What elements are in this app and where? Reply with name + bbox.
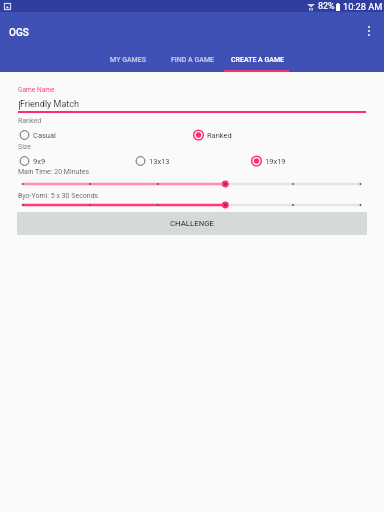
staticText: 13x13 (149, 157, 170, 166)
staticText: 9x9 (33, 157, 46, 166)
staticText: 82% (318, 1, 335, 12)
staticText: FIND A GAME (171, 56, 214, 64)
staticText: 10:28 AM (343, 1, 383, 12)
staticText: Ranked (207, 131, 232, 140)
button[interactable] (0, 199, 384, 211)
staticText: Game Name (18, 86, 55, 94)
staticText: Main Time: 20 Minutes (18, 168, 90, 176)
staticText: CHALLENGE (170, 219, 214, 228)
staticText: Ranked (18, 117, 42, 125)
button[interactable]: CREATE A GAME (225, 48, 290, 72)
staticText: OGS (9, 27, 29, 39)
staticText: MY GAMES (110, 56, 146, 64)
button[interactable]: 19x19 (250, 156, 366, 166)
button[interactable]: 9x9 (18, 156, 134, 166)
button[interactable]: MY GAMES (95, 48, 160, 72)
button[interactable] (0, 178, 384, 190)
button[interactable]: 13x13 (134, 156, 250, 166)
button[interactable]: Ranked (192, 130, 366, 140)
staticText: CREATE A GAME (231, 56, 284, 64)
staticText: Friendly Match (20, 99, 79, 110)
staticText: Size (18, 143, 31, 151)
button[interactable]: FIND A GAME (160, 48, 225, 72)
staticText: Casual (33, 131, 56, 140)
button[interactable]: CHALLENGE (17, 212, 367, 235)
staticText: Byo-Yomi: 5 x 30 Seconds (18, 192, 99, 200)
staticText: 19x19 (265, 157, 286, 166)
button[interactable]: Casual (18, 130, 192, 140)
button[interactable]: More options (360, 22, 378, 40)
